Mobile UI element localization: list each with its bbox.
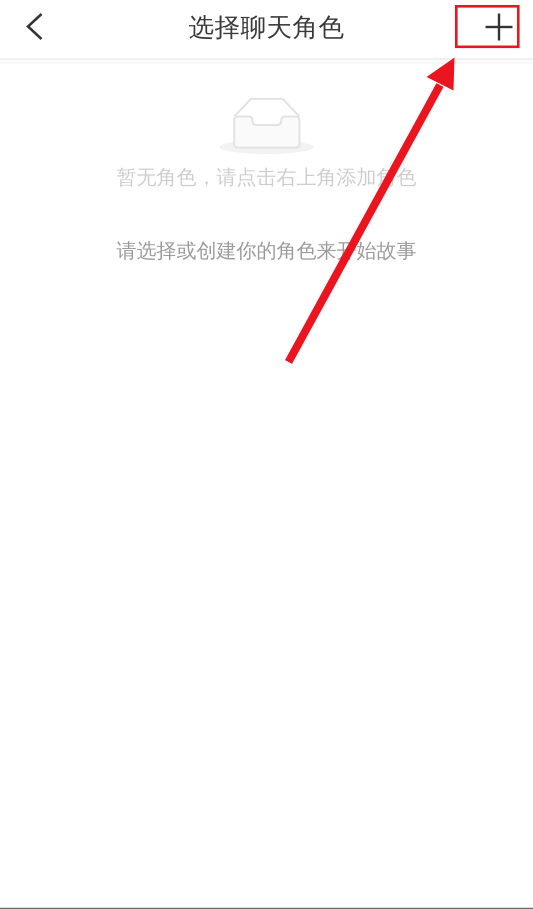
staticText: 选择聊天角色 [188, 11, 344, 44]
staticText: 暂无角色，请点击右上角添加角色 [116, 165, 416, 190]
button[interactable]: 返回 [0, 0, 64, 57]
button[interactable]: 添加角色 [454, 0, 518, 58]
staticText: 请选择或创建你的角色来开始故事 [116, 239, 416, 263]
